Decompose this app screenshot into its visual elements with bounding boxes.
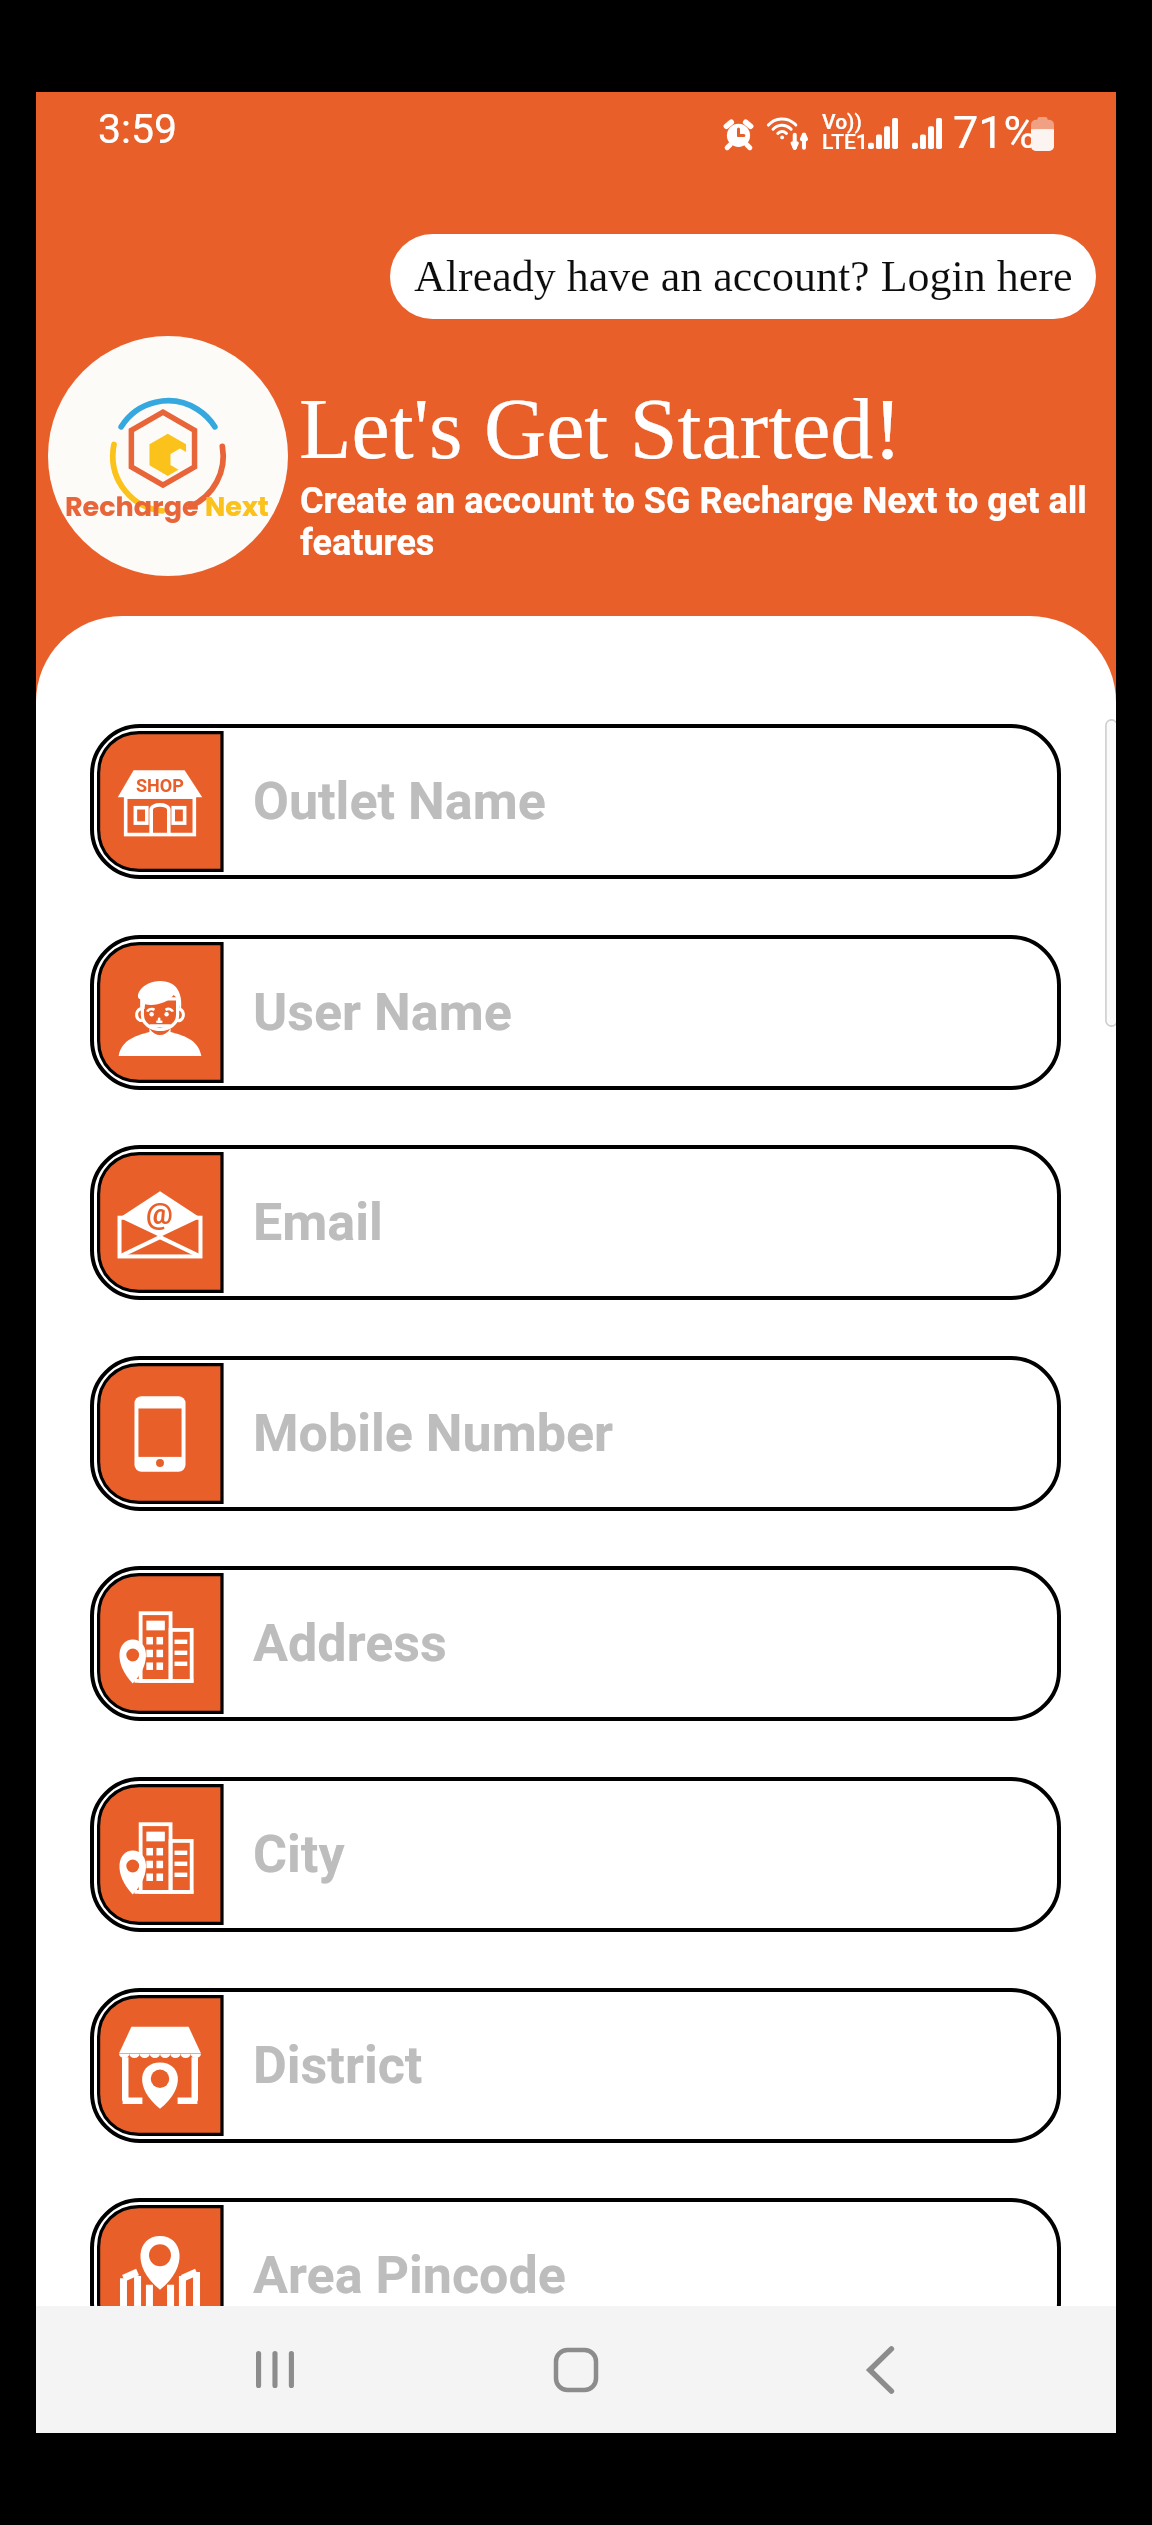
- staticText: Already have an account? Login here: [414, 252, 1073, 301]
- staticText: Next: [205, 488, 269, 526]
- button[interactable]: Back: [825, 2306, 935, 2433]
- button[interactable]: City: [90, 1777, 1061, 1932]
- button[interactable]: Home: [521, 2306, 631, 2433]
- staticText: SHOP: [136, 775, 184, 796]
- staticText: Recharge: [65, 488, 205, 526]
- button[interactable]: @: [90, 1145, 1061, 1300]
- button[interactable]: User Name: [90, 935, 1061, 1090]
- staticText: City: [253, 1824, 345, 1885]
- staticText: @: [146, 1196, 173, 1231]
- staticText: 3:59: [98, 105, 178, 153]
- staticText: User Name: [253, 982, 512, 1043]
- staticText: Address: [253, 1613, 447, 1674]
- staticText: Outlet Name: [253, 771, 546, 832]
- staticText: Area Pincode: [253, 2245, 566, 2306]
- staticText: Vo)): [822, 110, 862, 135]
- button[interactable]: Already have an account? Login here: [390, 234, 1096, 319]
- button[interactable]: Address: [90, 1566, 1061, 1721]
- button[interactable]: District: [90, 1988, 1061, 2143]
- button[interactable]: Mobile Number: [90, 1356, 1061, 1511]
- button[interactable]: SHOP: [90, 724, 1061, 879]
- staticText: Create an account to SG Recharge Next to…: [300, 480, 1090, 564]
- staticText: Email: [253, 1192, 383, 1253]
- staticText: Let's Get Started!: [299, 381, 902, 476]
- button[interactable]: Area Pincode: [90, 2198, 1061, 2353]
- staticText: 71%: [953, 106, 1037, 159]
- staticText: Mobile Number: [253, 1403, 614, 1464]
- button[interactable]: Recents: [220, 2306, 330, 2433]
- staticText: LTE1: [822, 130, 868, 155]
- staticText: District: [253, 2035, 423, 2096]
